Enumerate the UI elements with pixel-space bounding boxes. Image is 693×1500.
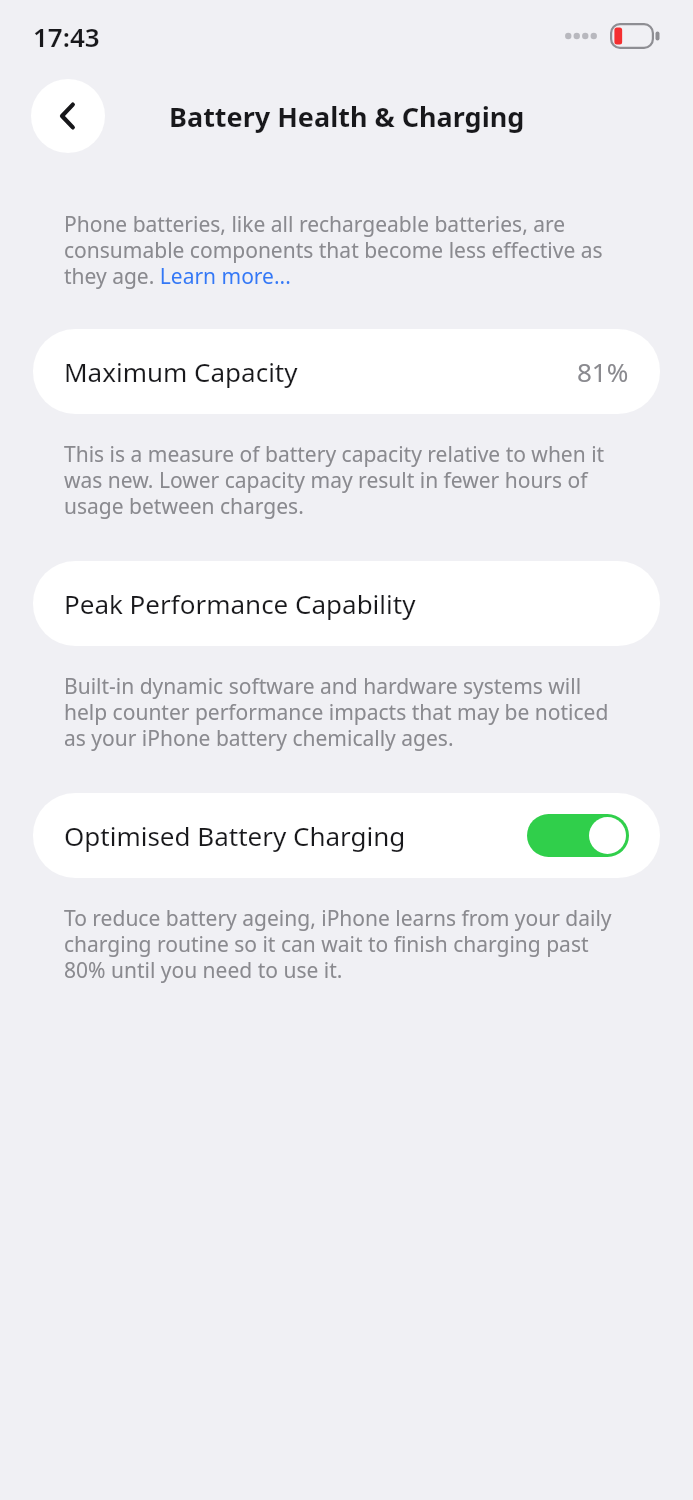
staticText: Optimised Battery Charging (64, 818, 406, 853)
button[interactable]: Back (31, 79, 105, 153)
staticText: Maximum Capacity (64, 354, 298, 389)
staticText: Phone batteries, like all rechargeable b… (64, 210, 629, 291)
button[interactable]: Maximum Capacity (33, 329, 660, 414)
button[interactable]: Optimised Battery Charging (33, 793, 660, 878)
staticText: 17:43 (33, 19, 100, 54)
staticText: To reduce battery ageing, iPhone learns … (64, 904, 629, 985)
staticText: Battery Health & Charging (169, 98, 525, 135)
staticText: This is a measure of battery capacity re… (64, 440, 629, 521)
button[interactable]: Peak Performance Capability (33, 561, 660, 646)
button[interactable]: Optimised Battery Charging toggle, on (527, 814, 629, 857)
staticText: Built-in dynamic software and hardware s… (64, 672, 629, 753)
staticText: 81% (577, 354, 629, 389)
staticText: Peak Performance Capability (64, 586, 416, 621)
